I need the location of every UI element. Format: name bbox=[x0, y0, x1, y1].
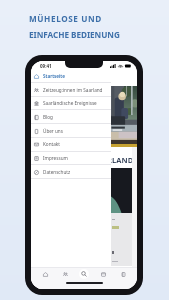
staticText: Blog bbox=[43, 114, 53, 120]
button[interactable]: Startseite bbox=[31, 69, 111, 83]
button[interactable]: Über uns bbox=[31, 124, 111, 138]
button[interactable]: Kontakt bbox=[31, 137, 111, 151]
button[interactable]: Impressum bbox=[31, 151, 111, 165]
staticText: Impressum bbox=[43, 155, 68, 161]
button[interactable]: Ereignisse bbox=[98, 269, 108, 279]
staticText: Startseite bbox=[43, 73, 65, 79]
staticText: MÜHELOSE UND bbox=[29, 13, 102, 24]
button[interactable]: Zeitzeugen bbox=[60, 269, 70, 279]
button[interactable]: Startseite bbox=[40, 269, 50, 279]
button[interactable]: Saarländische Ereignisse bbox=[31, 96, 111, 110]
staticText: RLAND bbox=[107, 155, 134, 165]
staticText: Kontakt bbox=[43, 141, 60, 147]
staticText: EINFACHE BEDIENUNG bbox=[29, 29, 120, 40]
staticText: Datenschutz bbox=[43, 169, 71, 175]
button[interactable]: Datenschutz bbox=[31, 165, 111, 179]
staticText: 09:41 bbox=[40, 63, 52, 69]
staticText: Saarländische Ereignisse bbox=[43, 100, 97, 106]
button[interactable]: Suche bbox=[79, 269, 89, 279]
button[interactable]: Blog bbox=[31, 110, 111, 124]
staticText: Über uns bbox=[43, 128, 63, 134]
button[interactable]: Merkliste bbox=[118, 269, 128, 279]
button[interactable]: Zeitzeug:innen im Saarland bbox=[31, 83, 111, 97]
staticText: Zeitzeug:innen im Saarland bbox=[43, 87, 103, 93]
